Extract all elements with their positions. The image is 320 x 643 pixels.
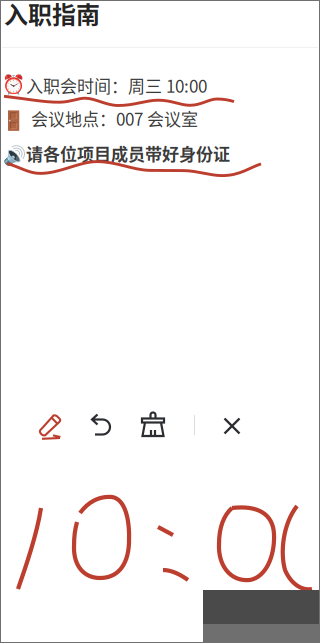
button[interactable]: Clear all bbox=[140, 411, 167, 439]
staticText: ⏰ bbox=[2, 74, 25, 95]
button[interactable]: Close bbox=[223, 417, 241, 435]
staticText: 入职指南 bbox=[4, 0, 100, 31]
staticText: 🔊 bbox=[3, 145, 26, 166]
staticText: 会议地点：007 会议室 bbox=[31, 106, 198, 131]
staticText: 🚪 bbox=[2, 110, 25, 131]
button[interactable]: Undo bbox=[89, 413, 112, 436]
staticText: 请各位项目成员带好身份证 bbox=[26, 141, 230, 166]
staticText: 入职会时间：周三 10:00 bbox=[26, 73, 207, 98]
button[interactable]: Highlight pen bbox=[39, 413, 63, 441]
